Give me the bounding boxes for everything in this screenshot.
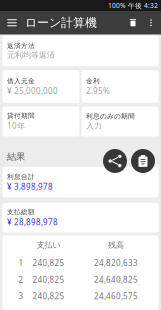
staticText: 支払い	[36, 240, 60, 250]
staticText: 24,460,575	[94, 291, 138, 301]
staticText: ローン計算機	[25, 15, 97, 30]
button[interactable]: Delete	[123, 11, 143, 34]
staticText: ¥ 28,898,978	[7, 217, 58, 227]
staticText: 240,825	[32, 274, 64, 285]
staticText: 2.95%	[86, 85, 110, 96]
button[interactable]: 金利	[82, 70, 158, 103]
staticText: 利息合計	[7, 173, 35, 181]
staticText: 240,825	[32, 291, 64, 301]
staticText: 金利	[86, 77, 100, 85]
staticText: 返済方法	[7, 42, 35, 50]
staticText: 10年	[7, 120, 25, 131]
staticText: 午後 4:32	[128, 1, 158, 10]
staticText: 1	[18, 257, 23, 268]
staticText: 24,820,633	[94, 257, 138, 268]
staticText: 2	[18, 274, 23, 285]
button[interactable]: 借入元金	[2, 70, 79, 103]
staticText: 元利均等返済	[7, 50, 55, 60]
button[interactable]: 返済方法	[2, 35, 158, 66]
staticText: 利息のみの期間	[86, 112, 135, 120]
button[interactable]: 貸付期間	[2, 106, 79, 136]
staticText: 24,640,825	[94, 274, 138, 285]
button[interactable]: 支払総額	[2, 203, 158, 233]
button[interactable]: Copy	[131, 149, 155, 173]
staticText: 支払総額	[7, 208, 35, 216]
staticText: 240,825	[32, 257, 64, 268]
staticText: ¥ 25,000,000	[7, 85, 58, 96]
button[interactable]: Share	[103, 149, 127, 173]
button[interactable]: Menu	[0, 11, 24, 34]
staticText: 100%	[108, 1, 126, 10]
button[interactable]: 利息のみの期間	[82, 106, 158, 136]
staticText: 借入元金	[7, 77, 35, 85]
staticText: 結果	[7, 151, 25, 162]
button[interactable]: 利息合計	[2, 167, 158, 198]
staticText: ¥ 3,898,978	[7, 181, 53, 192]
button[interactable]: More options	[143, 11, 159, 34]
staticText: 3	[18, 291, 23, 301]
staticText: 貸付期間	[7, 112, 35, 120]
staticText: 残高	[108, 240, 124, 250]
staticText: 入力	[86, 121, 102, 131]
